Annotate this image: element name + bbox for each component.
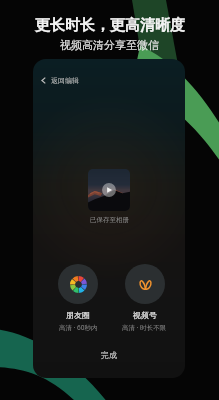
staticText: 返回编辑 <box>51 76 79 85</box>
button[interactable]: 朋友圈 <box>58 264 98 332</box>
staticText: 完成 <box>101 350 117 360</box>
staticText: 朋友圈 <box>66 310 90 320</box>
staticText: 高清 · 时长不限 <box>122 323 167 332</box>
button[interactable] <box>88 169 130 211</box>
staticText: 更长时长，更高清晰度 <box>35 16 185 35</box>
button[interactable]: 视频号 <box>122 264 167 332</box>
button[interactable]: 返回编辑 <box>37 74 81 87</box>
staticText: 已保存至相册 <box>90 216 129 224</box>
staticText: 视频号 <box>133 310 157 320</box>
button[interactable]: 完成 <box>89 346 129 364</box>
staticText: 高清 · 60秒内 <box>59 323 98 332</box>
staticText: 视频高清分享至微信 <box>60 38 159 52</box>
